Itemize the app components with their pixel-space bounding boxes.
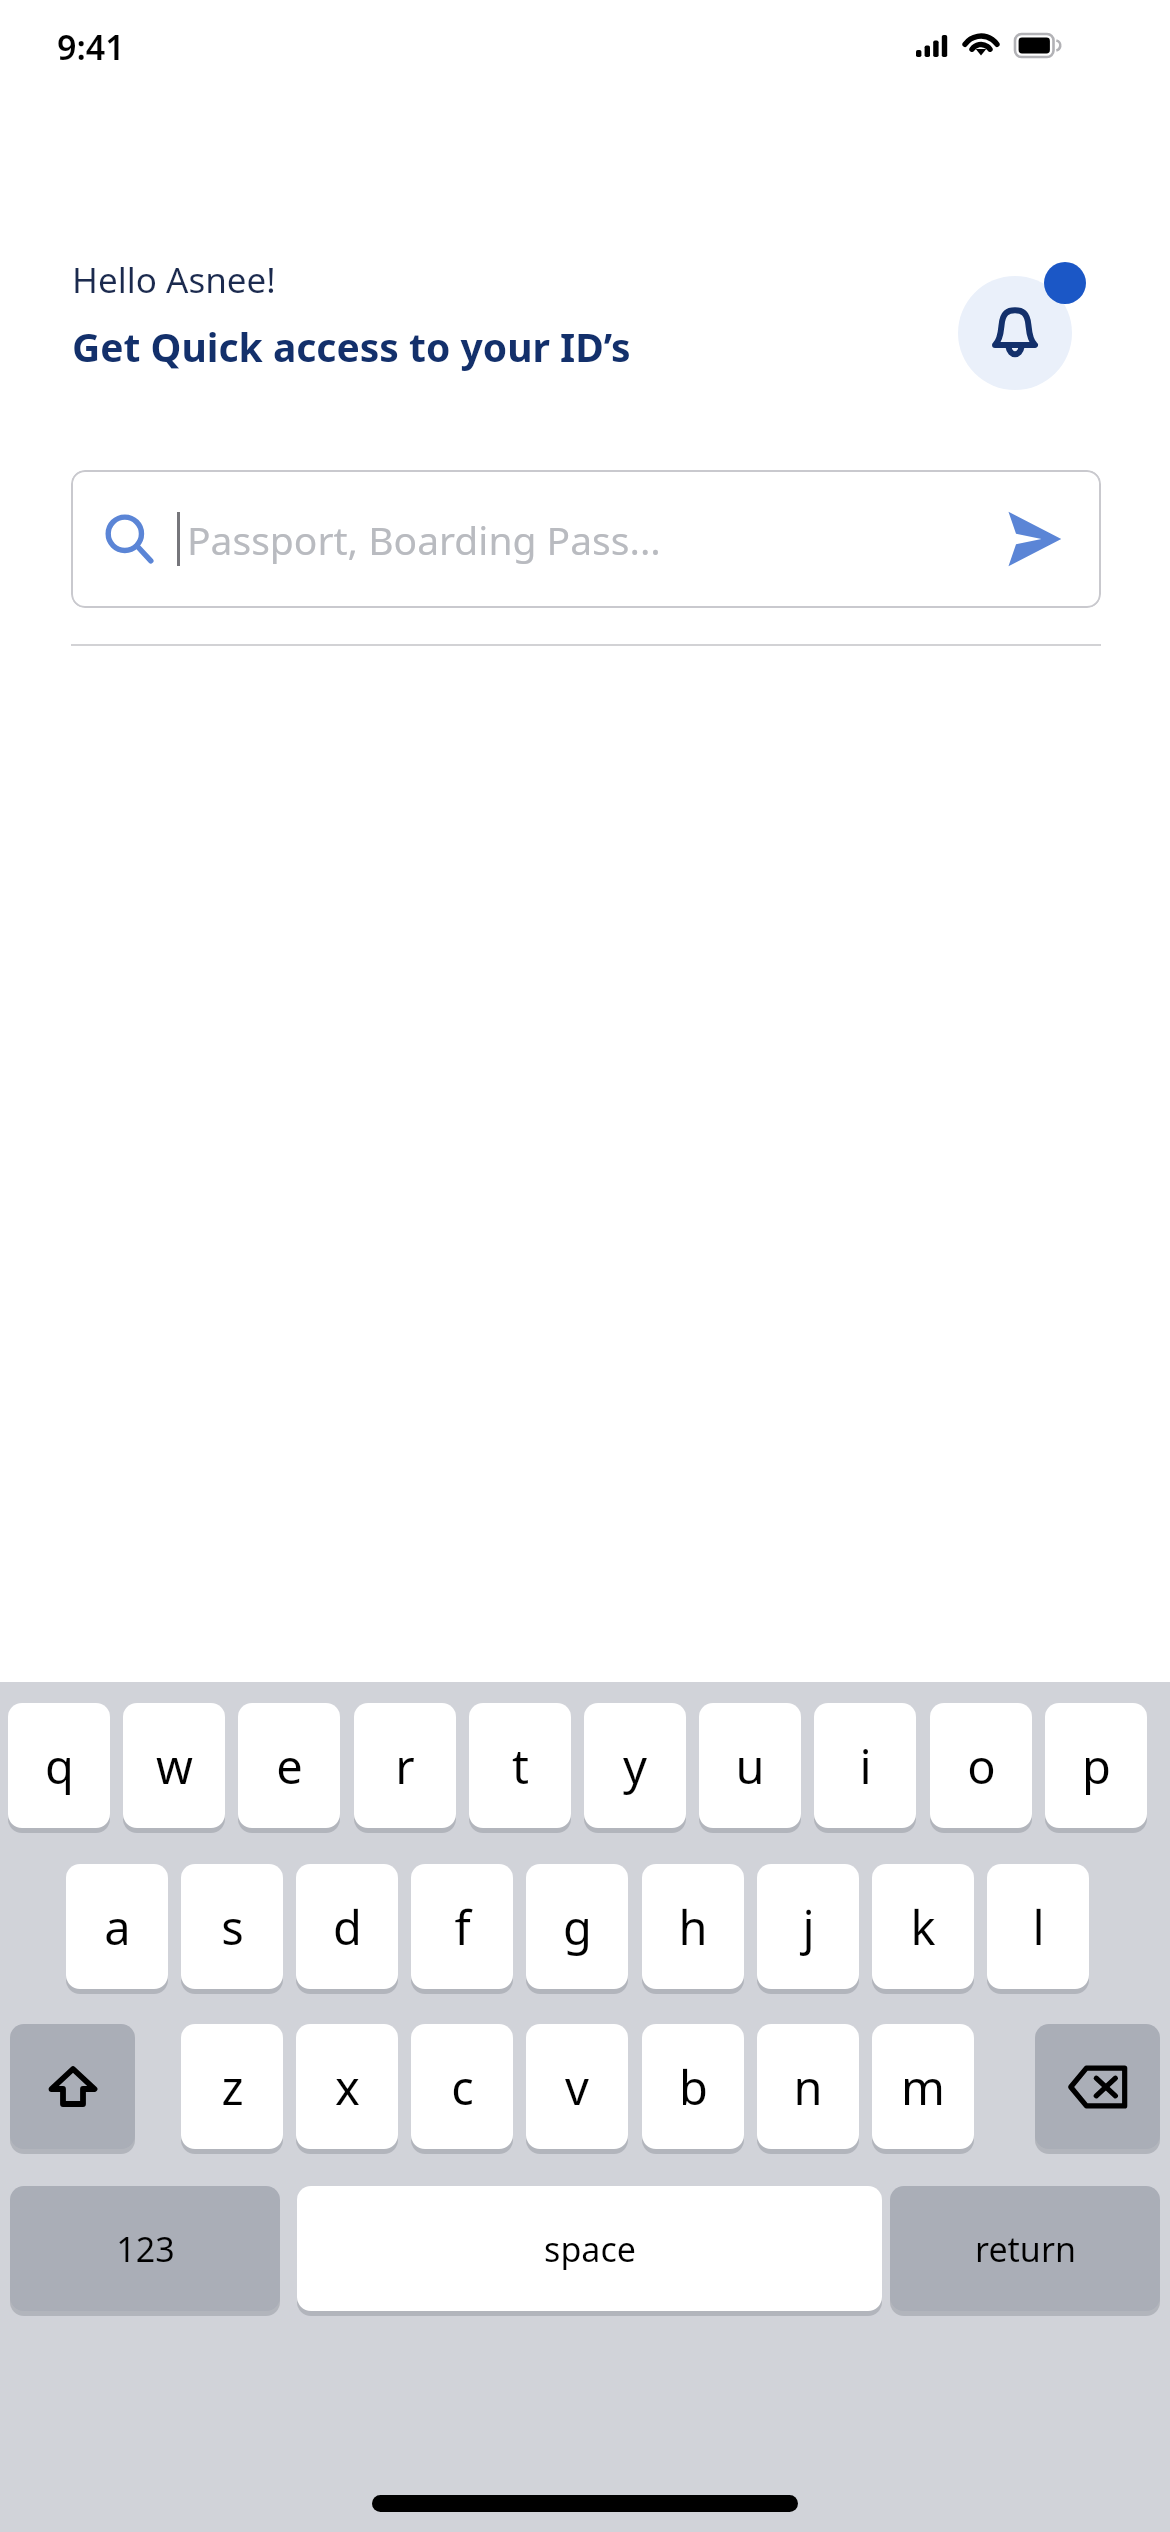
button[interactable]: r xyxy=(354,1703,456,1828)
button[interactable]: a xyxy=(66,1864,168,1989)
button[interactable]: 123 xyxy=(10,2186,280,2311)
button[interactable]: v xyxy=(526,2024,628,2149)
staticText: j xyxy=(802,1895,815,1959)
button[interactable]: t xyxy=(469,1703,571,1828)
button[interactable]: p xyxy=(1045,1703,1147,1828)
staticText: i xyxy=(859,1734,872,1798)
button[interactable]: y xyxy=(584,1703,686,1828)
button[interactable]: Notifications xyxy=(958,276,1072,390)
button[interactable]: n xyxy=(757,2024,859,2149)
staticText: space xyxy=(544,2226,636,2272)
staticText: q xyxy=(45,1734,74,1798)
button[interactable]: Backspace xyxy=(1035,2024,1160,2149)
staticText: n xyxy=(793,2055,823,2119)
button[interactable]: g xyxy=(526,1864,628,1989)
button[interactable]: x xyxy=(296,2024,398,2149)
staticText: k xyxy=(910,1895,936,1959)
staticText: m xyxy=(901,2055,945,2119)
button[interactable]: w xyxy=(123,1703,225,1828)
button[interactable]: j xyxy=(757,1864,859,1989)
staticText: Passport, Boarding Pass... xyxy=(187,513,661,566)
button[interactable]: Passport, Boarding Pass... xyxy=(71,470,1101,608)
staticText: r xyxy=(395,1734,415,1798)
staticText: y xyxy=(623,1734,647,1798)
staticText: Hello Asnee! xyxy=(72,256,276,304)
staticText: g xyxy=(563,1895,592,1959)
staticText: w xyxy=(156,1734,193,1798)
button[interactable]: e xyxy=(238,1703,340,1828)
staticText: a xyxy=(104,1895,131,1959)
staticText: u xyxy=(735,1734,765,1798)
button[interactable]: l xyxy=(987,1864,1089,1989)
staticText: o xyxy=(967,1734,996,1798)
button[interactable]: k xyxy=(872,1864,974,1989)
button[interactable]: z xyxy=(181,2024,283,2149)
button[interactable]: q xyxy=(8,1703,110,1828)
button[interactable]: m xyxy=(872,2024,974,2149)
staticText: t xyxy=(512,1734,529,1798)
staticText: Get Quick access to your ID’s xyxy=(72,320,631,373)
button[interactable]: s xyxy=(181,1864,283,1989)
button[interactable]: o xyxy=(930,1703,1032,1828)
button[interactable]: return xyxy=(890,2186,1160,2311)
button[interactable]: space xyxy=(297,2186,882,2311)
staticText: v xyxy=(565,2055,589,2119)
button[interactable]: Send xyxy=(1003,508,1065,570)
button[interactable]: h xyxy=(642,1864,744,1989)
button[interactable]: u xyxy=(699,1703,801,1828)
staticText: 123 xyxy=(116,2226,175,2272)
staticText: 9:41 xyxy=(57,24,125,70)
button[interactable]: d xyxy=(296,1864,398,1989)
button[interactable]: c xyxy=(411,2024,513,2149)
staticText: x xyxy=(335,2055,360,2119)
staticText: f xyxy=(454,1895,471,1959)
staticText: h xyxy=(678,1895,708,1959)
staticText: p xyxy=(1082,1734,1111,1798)
staticText: return xyxy=(975,2226,1076,2272)
staticText: d xyxy=(333,1895,362,1959)
staticText: e xyxy=(276,1734,303,1798)
staticText: l xyxy=(1032,1895,1045,1959)
staticText: b xyxy=(679,2055,708,2119)
button[interactable]: Shift xyxy=(10,2024,135,2149)
staticText: z xyxy=(221,2055,244,2119)
button[interactable]: f xyxy=(411,1864,513,1989)
button[interactable]: i xyxy=(814,1703,916,1828)
staticText: s xyxy=(221,1895,244,1959)
staticText: c xyxy=(451,2055,474,2119)
button[interactable]: b xyxy=(642,2024,744,2149)
